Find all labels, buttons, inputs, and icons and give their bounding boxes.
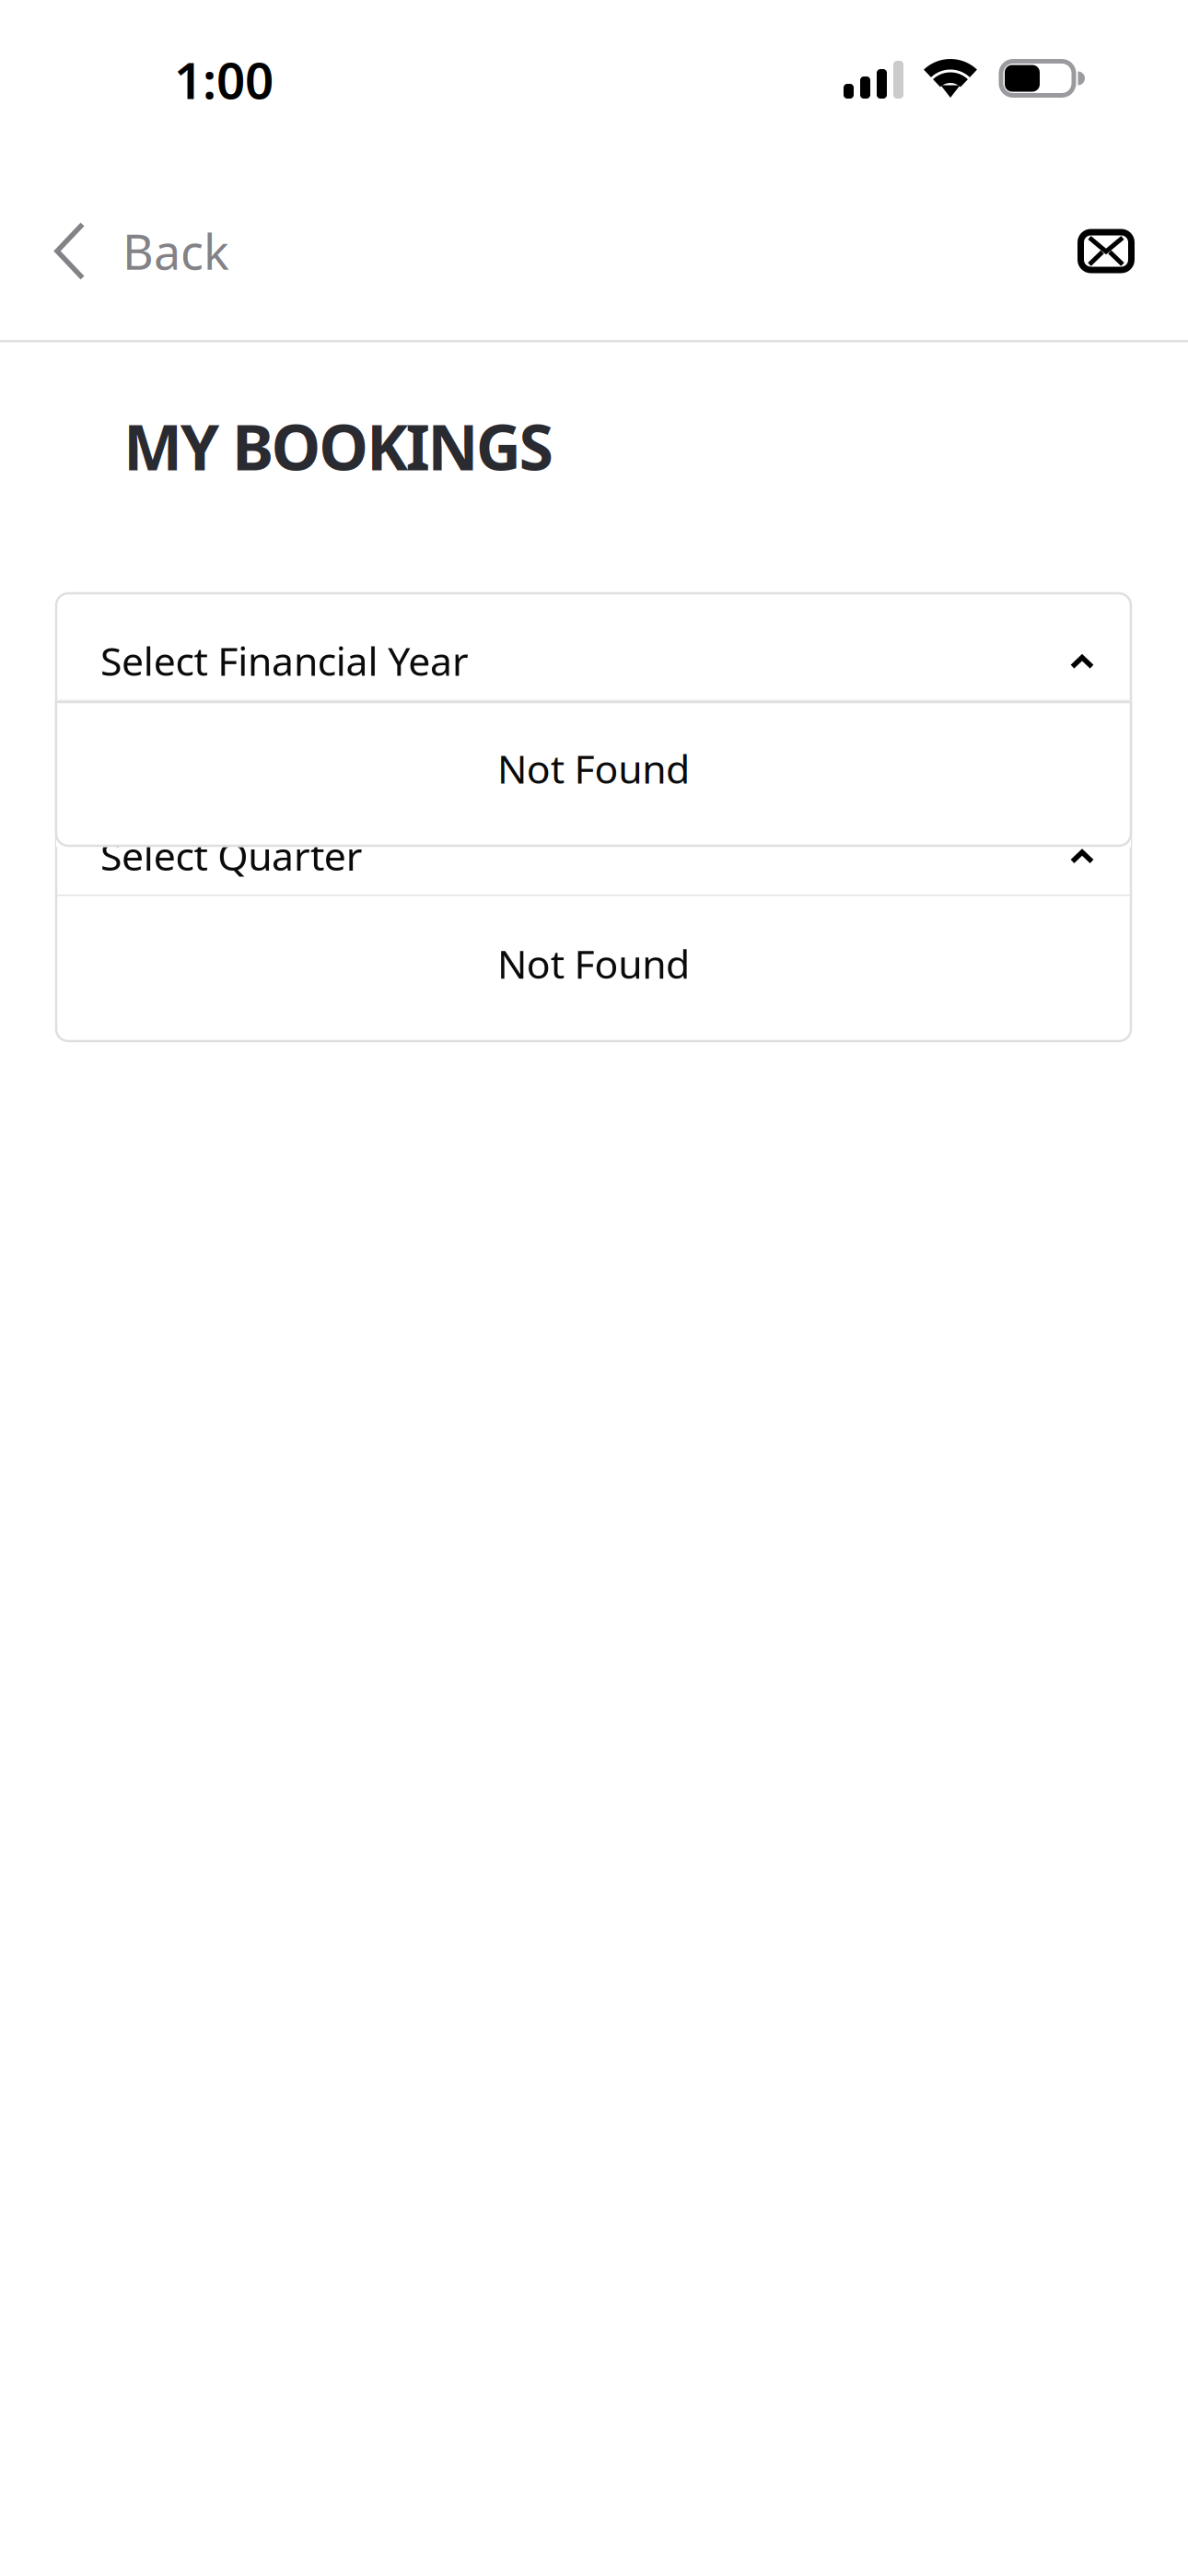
staticText: Not Found [497, 937, 690, 990]
button[interactable]: Select Financial Year [56, 593, 1131, 700]
button[interactable]: Select Quarter [56, 788, 1131, 895]
staticText: Select Financial Year [100, 634, 469, 687]
staticText: Back [122, 219, 229, 283]
button[interactable]: Mail [1051, 162, 1161, 340]
staticText: 1:00 [174, 46, 274, 113]
staticText: Not Found [497, 742, 690, 794]
button[interactable]: Back [0, 162, 255, 340]
staticText: Select Quarter [100, 829, 363, 881]
staticText: MY BOOKINGS [123, 404, 553, 488]
